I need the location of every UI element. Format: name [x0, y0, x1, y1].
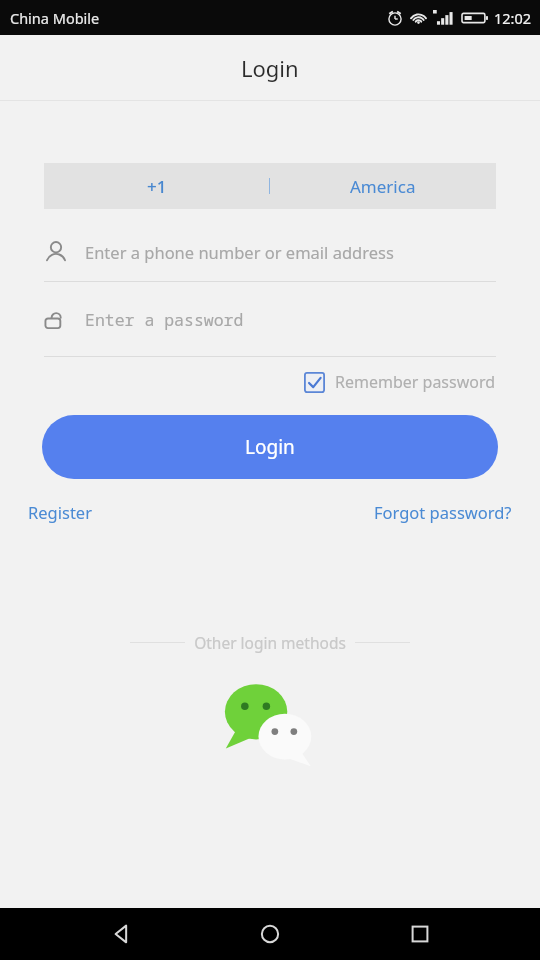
button[interactable]: +1 — [44, 163, 269, 209]
button[interactable]: Home — [240, 908, 300, 960]
button[interactable]: Forgot password? — [374, 501, 512, 523]
staticText: 12:02 — [494, 8, 532, 28]
button[interactable]: Enter a password — [44, 282, 496, 356]
staticText: +1 — [147, 175, 167, 198]
staticText: Login — [241, 53, 299, 83]
staticText: Other login methods — [194, 632, 346, 653]
button[interactable]: Login — [42, 415, 498, 479]
button[interactable]: America — [270, 163, 496, 209]
button[interactable]: Back — [90, 908, 150, 960]
button[interactable]: Sign in with WeChat — [222, 681, 318, 761]
staticText: Enter a phone number or email address — [85, 241, 394, 263]
button[interactable]: Register — [28, 501, 92, 523]
button[interactable]: Recent apps — [390, 908, 450, 960]
staticText: Login — [245, 434, 295, 460]
staticText: Remember password — [335, 371, 496, 393]
button[interactable]: Remember password — [304, 371, 496, 393]
staticText: Register — [28, 501, 92, 523]
staticText: China Mobile — [10, 8, 100, 28]
button[interactable]: Enter a phone number or email address — [44, 223, 496, 281]
staticText: Enter a password — [85, 308, 244, 330]
staticText: America — [350, 175, 416, 198]
staticText: Forgot password? — [374, 501, 512, 523]
